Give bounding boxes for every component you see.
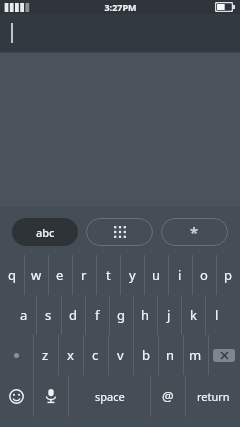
staticText: h [141,306,150,324]
staticText: d [69,306,77,324]
staticText: 3:27PM [104,1,137,13]
button[interactable]: q [0,255,24,295]
staticText: b [142,346,150,364]
button[interactable]: space [69,375,150,417]
staticText: return [197,389,230,404]
button[interactable]: Keyboard layouts [86,218,153,246]
staticText: l [215,306,219,324]
button[interactable]: l [205,295,229,335]
button[interactable]: m [183,335,208,375]
button[interactable]: return [186,375,240,417]
staticText: z [42,346,49,364]
staticText: q [8,266,16,284]
button[interactable]: z [33,335,58,375]
staticText: k [190,306,197,324]
staticText: p [224,266,232,284]
staticText: a [20,306,28,324]
staticText: n [166,346,175,364]
staticText: m [189,346,202,364]
button[interactable]: Emoji [0,375,33,417]
staticText: j [167,306,171,324]
button[interactable]: j [157,295,181,335]
button[interactable]: t [96,255,120,295]
staticText: @ [162,387,174,405]
button[interactable]: abc [12,218,78,246]
staticText: y [129,266,136,284]
staticText: t [106,266,111,284]
button[interactable]: p [216,255,240,295]
staticText: x [67,346,74,364]
staticText: f [95,306,100,324]
button[interactable]: h [133,295,157,335]
staticText: space [95,389,125,404]
button[interactable]: o [192,255,216,295]
staticText: c [92,346,99,364]
staticText: u [152,266,161,284]
button[interactable]: Shift [0,335,33,375]
staticText: w [31,266,42,284]
button[interactable]: w [24,255,48,295]
staticText: s [45,306,52,324]
staticText: r [81,266,87,284]
button[interactable]: Voice input [34,375,68,417]
button[interactable]: r [72,255,96,295]
staticText: o [200,266,208,284]
button[interactable]: Symbols [161,218,228,246]
button[interactable]: e [48,255,72,295]
button[interactable]: s [36,295,61,335]
staticText: i [178,266,182,284]
button[interactable]: v [108,335,133,375]
button[interactable]: @ [151,375,185,417]
staticText: abc [36,225,55,240]
button[interactable]: i [168,255,192,295]
button[interactable]: b [133,335,158,375]
button[interactable]: f [85,295,109,335]
button[interactable]: y [120,255,144,295]
button[interactable]: u [144,255,168,295]
button[interactable]: d [61,295,85,335]
staticText: g [117,306,125,324]
button[interactable]: g [109,295,133,335]
button[interactable]: a [11,295,36,335]
button[interactable]: x [58,335,83,375]
button[interactable]: c [83,335,108,375]
staticText: * [190,222,199,242]
button[interactable]: Backspace [208,335,240,375]
button[interactable]: n [158,335,183,375]
staticText: v [117,346,124,364]
button[interactable] [0,14,240,52]
button[interactable]: k [181,295,205,335]
staticText: e [56,266,64,284]
